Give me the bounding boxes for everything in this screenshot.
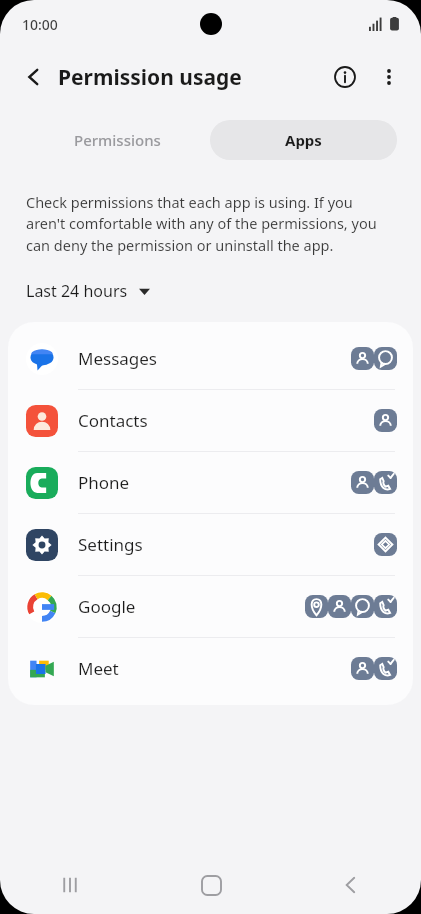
button[interactable]: More options [367, 55, 411, 99]
button[interactable]: Messages [8, 328, 413, 389]
button[interactable]: Contacts [8, 390, 413, 451]
button[interactable]: Information [323, 55, 367, 99]
staticText: Check permissions that each app is using… [26, 192, 395, 256]
button[interactable]: Meet [8, 638, 413, 699]
staticText: Phone [78, 471, 130, 494]
staticText: Permission usage [58, 63, 242, 92]
staticText: 10:00 [22, 15, 58, 34]
button[interactable]: Recent apps [38, 856, 102, 914]
button[interactable]: Back [319, 856, 383, 914]
button[interactable]: Apps [210, 120, 397, 160]
button[interactable]: Home [179, 856, 243, 914]
button[interactable]: Permissions [24, 120, 210, 160]
staticText: Last 24 hours [26, 280, 128, 302]
staticText: Google [78, 595, 136, 618]
button[interactable]: Phone [8, 452, 413, 513]
staticText: Meet [78, 657, 119, 680]
staticText: Settings [78, 533, 143, 556]
button[interactable]: Google [8, 576, 413, 637]
button[interactable]: Settings [8, 514, 413, 575]
staticText: Apps [285, 130, 322, 150]
staticText: Messages [78, 347, 158, 370]
staticText: Permissions [74, 130, 161, 150]
button[interactable]: Back [12, 55, 56, 99]
button[interactable]: Last 24 hours [26, 278, 156, 304]
staticText: Contacts [78, 409, 148, 432]
